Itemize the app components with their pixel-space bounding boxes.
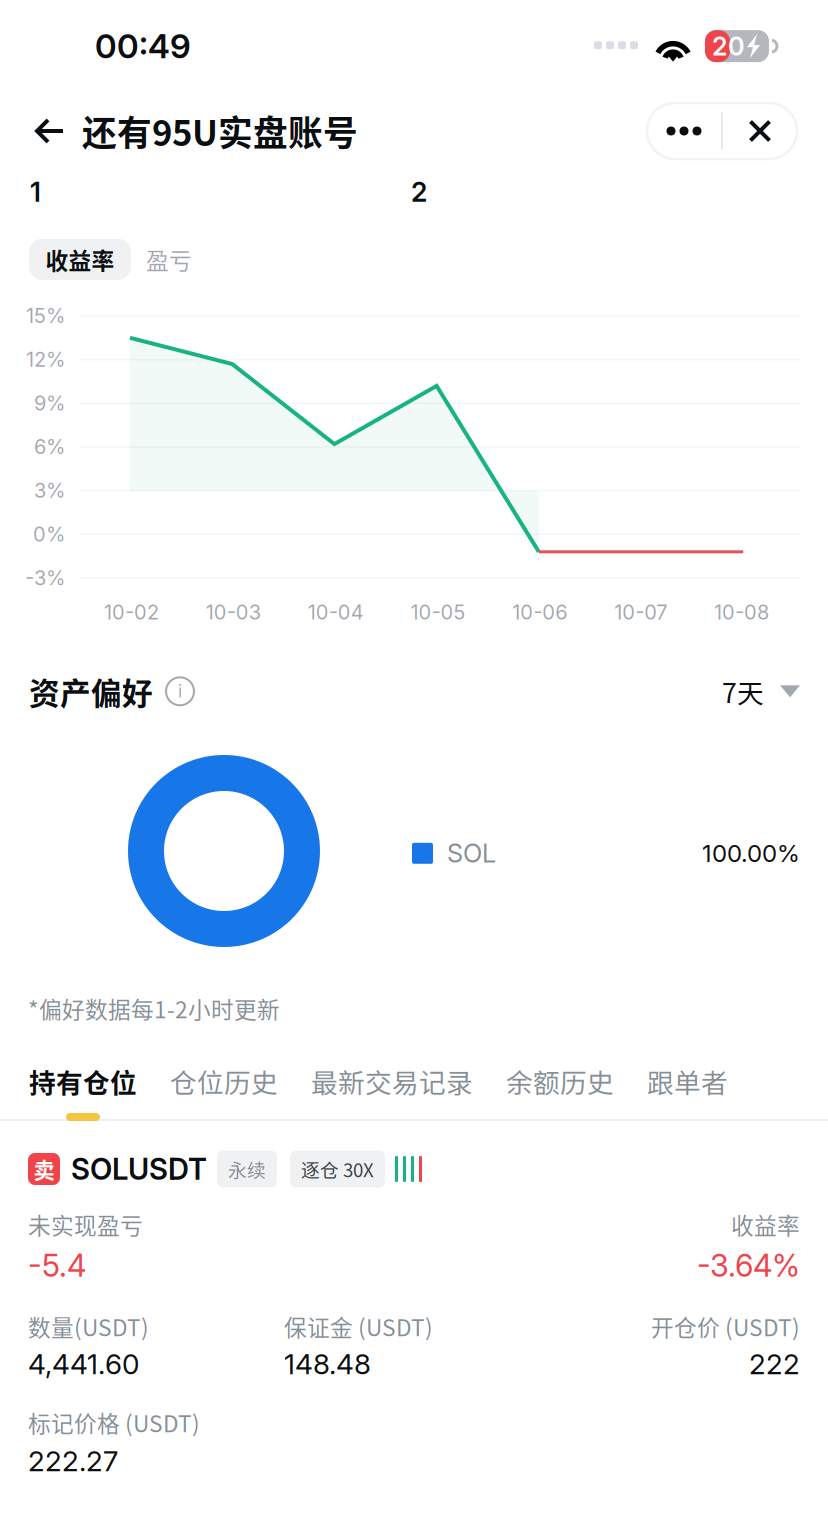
button[interactable]: 持有仓位 bbox=[29, 1062, 137, 1121]
staticText: SOLUSDT bbox=[71, 1151, 207, 1187]
staticText: 3% bbox=[34, 478, 65, 503]
staticText: 余额历史 bbox=[506, 1062, 614, 1100]
staticText: -3% bbox=[25, 566, 65, 590]
staticText: 逐仓 30X bbox=[301, 1155, 374, 1182]
staticText: 4,441.60 bbox=[28, 1347, 139, 1381]
button[interactable]: 最新交易记录 bbox=[311, 1062, 473, 1121]
staticText: 资产偏好 bbox=[29, 669, 153, 713]
staticText: 跟单者 bbox=[647, 1062, 728, 1100]
button[interactable]: 余额历史 bbox=[506, 1062, 614, 1121]
staticText: 6% bbox=[34, 435, 65, 459]
staticText: -3.64% bbox=[697, 1247, 800, 1284]
staticText: 148.48 bbox=[284, 1347, 371, 1381]
staticText: 10-08 bbox=[714, 600, 769, 624]
staticText: 10-02 bbox=[104, 600, 159, 624]
staticText: 保证金 (USDT) bbox=[284, 1310, 433, 1343]
button[interactable]: 收益率 bbox=[29, 239, 131, 280]
staticText: 10-06 bbox=[512, 600, 567, 624]
staticText: 0% bbox=[33, 522, 65, 546]
staticText: SOL bbox=[447, 838, 496, 869]
staticText: 永续 bbox=[228, 1155, 266, 1182]
staticText: 卖 bbox=[33, 1154, 54, 1184]
staticText: 15% bbox=[26, 304, 65, 328]
button[interactable]: More options bbox=[647, 103, 721, 159]
staticText: 10-07 bbox=[614, 600, 667, 624]
staticText: 100.00% bbox=[702, 839, 800, 868]
staticText: 持有仓位 bbox=[29, 1062, 137, 1100]
button[interactable]: 仓位历史 bbox=[170, 1062, 278, 1121]
staticText: 10-03 bbox=[206, 600, 261, 624]
staticText: 未实现盈亏 bbox=[28, 1208, 143, 1241]
staticText: 222.27 bbox=[28, 1444, 118, 1478]
button[interactable]: 7天 bbox=[722, 662, 800, 721]
staticText: 9% bbox=[34, 391, 65, 415]
staticText: 标记价格 (USDT) bbox=[28, 1406, 200, 1439]
staticText: 盈亏 bbox=[146, 243, 192, 276]
staticText: 222 bbox=[749, 1347, 800, 1381]
button[interactable]: Back bbox=[22, 102, 78, 160]
staticText: i bbox=[178, 681, 182, 702]
staticText: 7天 bbox=[722, 672, 764, 711]
staticText: 1 bbox=[30, 176, 41, 208]
staticText: 2 bbox=[411, 176, 427, 208]
staticText: 10-04 bbox=[308, 600, 364, 624]
button[interactable]: 盈亏 bbox=[131, 235, 207, 284]
staticText: 收益率 bbox=[45, 243, 114, 276]
staticText: 12% bbox=[26, 347, 65, 372]
staticText: -5.4 bbox=[28, 1247, 86, 1284]
staticText: 收益率 bbox=[731, 1208, 800, 1241]
staticText: 数量(USDT) bbox=[28, 1310, 149, 1343]
staticText: 最新交易记录 bbox=[311, 1062, 473, 1100]
staticText: 还有95U实盘账号 bbox=[82, 106, 358, 156]
staticText: *偏好数据每1-2小时更新 bbox=[28, 992, 280, 1025]
staticText: 10-05 bbox=[410, 600, 465, 624]
staticText: 00:49 bbox=[95, 26, 191, 66]
staticText: 20 bbox=[712, 31, 745, 61]
button[interactable]: Close bbox=[723, 103, 797, 159]
staticText: 仓位历史 bbox=[170, 1062, 278, 1100]
button[interactable]: 跟单者 bbox=[647, 1062, 728, 1121]
staticText: 开仓价 (USDT) bbox=[651, 1310, 800, 1343]
